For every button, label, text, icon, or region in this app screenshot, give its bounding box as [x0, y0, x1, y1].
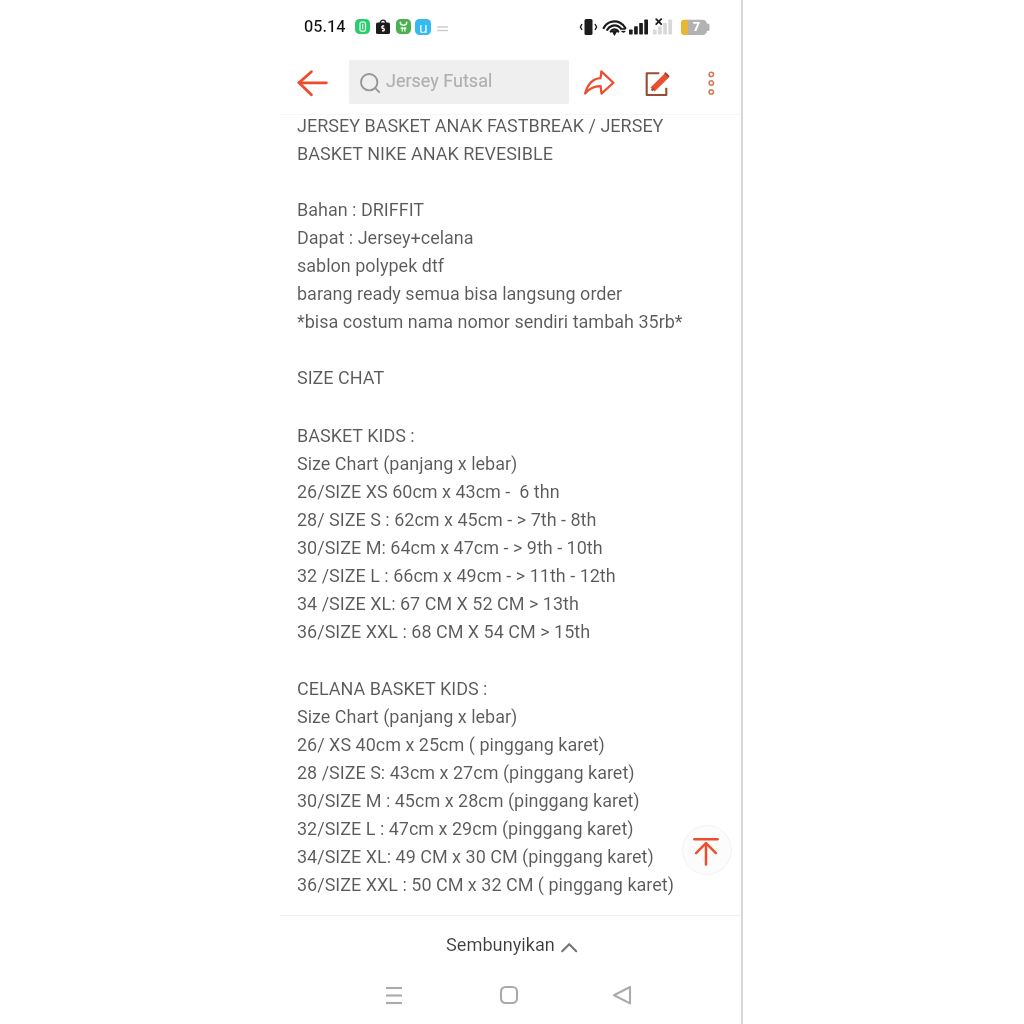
- staticText: CELANA BASKET KIDS : Size Chart (panjang…: [297, 645, 674, 897]
- staticText: Jersey Futsal: [386, 70, 493, 91]
- staticText: 05.14: [304, 17, 346, 36]
- button[interactable]: Share: [578, 60, 624, 106]
- staticText: Sembunyikan: [446, 934, 555, 955]
- staticText: BASKET KIDS : Size Chart (panjang x leba…: [297, 392, 616, 644]
- button[interactable]: Sembunyikan: [280, 916, 742, 974]
- staticText: u: [419, 19, 428, 34]
- button[interactable]: Edit: [636, 60, 682, 106]
- button[interactable]: Back: [280, 60, 326, 106]
- button[interactable]: Back: [606, 979, 646, 1019]
- button[interactable]: More options: [690, 60, 736, 106]
- staticText: 7: [693, 20, 700, 34]
- button[interactable]: Jersey Futsal: [349, 60, 569, 104]
- button[interactable]: Recents: [378, 979, 418, 1019]
- staticText: JERSEY BASKET ANAK FASTBREAK / JERSEY BA…: [297, 110, 683, 390]
- button[interactable]: Scroll to top: [682, 825, 732, 875]
- button[interactable]: Home: [493, 979, 533, 1019]
